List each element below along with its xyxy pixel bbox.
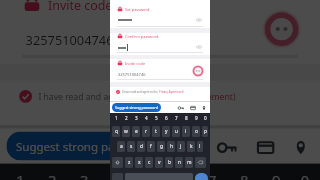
button[interactable]: 2: [121, 113, 131, 123]
button[interactable]: t: [152, 126, 160, 137]
button[interactable]: k: [187, 141, 195, 152]
staticText: s: [130, 143, 133, 150]
button[interactable]: 2: [35, 164, 67, 180]
button[interactable]: 9: [191, 113, 201, 123]
button[interactable]: Shift: [112, 157, 123, 168]
staticText: k: [190, 143, 193, 150]
button[interactable]: 9: [259, 164, 291, 180]
button[interactable]: q: [112, 126, 120, 137]
staticText: y: [165, 128, 168, 135]
staticText: Suggest strong password: [16, 138, 154, 154]
staticText: b: [168, 159, 171, 166]
button[interactable]: 1: [3, 164, 35, 180]
staticText: Confirm password: [125, 34, 159, 39]
button[interactable]: Cards: [256, 138, 275, 157]
button[interactable]: d: [137, 141, 145, 152]
button[interactable]: n: [175, 157, 183, 168]
button[interactable]: x: [135, 157, 143, 168]
staticText: t: [155, 128, 157, 135]
staticText: 0: [301, 170, 310, 180]
button[interactable]: I have read and agree to the: [116, 88, 206, 96]
staticText: Invite code: [125, 61, 146, 66]
button[interactable]: 6: [161, 113, 171, 123]
button[interactable]: Passwords: [178, 105, 184, 111]
button[interactable]: Addresses: [291, 138, 310, 157]
staticText: p: [204, 128, 207, 135]
button[interactable]: s: [127, 141, 135, 152]
staticText: z: [128, 159, 131, 166]
staticText: i: [185, 128, 187, 135]
button[interactable]: l: [197, 141, 203, 152]
button[interactable]: o: [192, 126, 200, 137]
staticText: Suggest strong password: [115, 105, 158, 110]
button[interactable]: 7: [195, 164, 227, 180]
button[interactable]: 5: [131, 164, 163, 180]
button[interactable]: 0: [291, 164, 317, 180]
button[interactable]: Addresses: [201, 105, 207, 111]
button[interactable]: 3: [131, 113, 141, 123]
staticText: 9: [272, 170, 282, 180]
button[interactable]: g: [157, 141, 165, 152]
staticText: c: [148, 159, 151, 166]
button[interactable]: m: [185, 157, 193, 168]
button[interactable]: 1: [111, 113, 121, 123]
button[interactable]: Suggest strong password: [6, 132, 163, 160]
staticText: Invite code: [48, 0, 115, 13]
button[interactable]: r: [142, 126, 150, 137]
button[interactable]: b: [165, 157, 173, 168]
staticText: 3: [80, 170, 90, 180]
button[interactable]: 3: [67, 164, 99, 180]
button[interactable]: j: [177, 141, 185, 152]
button[interactable]: v: [155, 157, 163, 168]
button[interactable]: Suggest strong password: [112, 103, 161, 112]
staticText: n: [178, 159, 181, 166]
button[interactable]: u: [172, 126, 180, 137]
staticText: f: [150, 143, 152, 150]
staticText: 8: [185, 115, 188, 121]
staticText: 325751004746: [26, 32, 115, 48]
button[interactable]: y: [162, 126, 170, 137]
button[interactable]: I have read and agree to the: [19, 84, 307, 109]
staticText: a: [120, 143, 123, 150]
button[interactable]: i: [182, 126, 190, 137]
button[interactable]: a: [117, 141, 125, 152]
button[interactable]: e: [132, 126, 140, 137]
button[interactable]: 7: [171, 113, 181, 123]
button[interactable]: Show password: [196, 17, 202, 23]
staticText: x: [138, 159, 141, 166]
button[interactable]: Cards: [190, 105, 196, 111]
button[interactable]: 4: [141, 113, 151, 123]
button[interactable]: 8: [227, 164, 259, 180]
button[interactable]: Passwords: [218, 138, 237, 157]
staticText: h: [170, 143, 173, 150]
staticText: j: [180, 143, 182, 150]
button[interactable]: p: [202, 126, 208, 137]
staticText: 0: [204, 115, 207, 121]
button[interactable]: Enter: [195, 173, 208, 180]
staticText: q: [115, 128, 118, 135]
staticText: I have read and agree to the: [122, 90, 159, 94]
button[interactable]: z: [125, 157, 133, 168]
staticText: 325751004746: [118, 72, 146, 77]
staticText: 1: [16, 170, 26, 180]
button[interactable]: Backspace: [195, 157, 206, 168]
button[interactable]: 8: [181, 113, 191, 123]
button[interactable]: 4: [99, 164, 131, 180]
staticText: Privacy Agreement): [157, 90, 237, 103]
button[interactable]: h: [167, 141, 175, 152]
button[interactable]: c: [145, 157, 153, 168]
button[interactable]: 5: [151, 113, 161, 123]
staticText: 8: [240, 170, 250, 180]
button[interactable]: w: [122, 126, 130, 137]
staticText: o: [195, 128, 198, 135]
button[interactable]: 0: [201, 113, 209, 123]
staticText: m: [187, 159, 192, 166]
staticText: e: [135, 128, 138, 135]
button[interactable]: f: [147, 141, 155, 152]
button[interactable]: 6: [163, 164, 195, 180]
staticText: 6: [176, 170, 186, 180]
button[interactable]: Show password: [196, 44, 202, 50]
staticText: u: [175, 128, 178, 135]
